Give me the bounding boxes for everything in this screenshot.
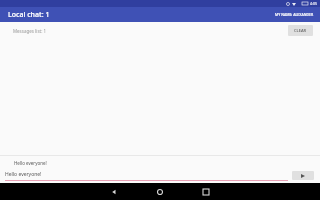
staticText: Messages list: 1 [13,28,47,34]
button[interactable]: MY NAME: ALEXANDER [275,12,314,17]
staticText: CLEAR [294,28,307,33]
staticText: Local chat: 1 [8,10,50,20]
button[interactable]: Home [137,183,183,200]
button[interactable]: Send message [292,171,314,180]
button[interactable]: Hello everyone! [5,171,288,181]
staticText: Hello everyone! [14,160,47,166]
button[interactable]: CLEAR [288,25,313,36]
staticText: Hello everyone! [5,171,42,178]
button[interactable]: Hello everyone! [14,160,47,166]
staticText: 4:05 [310,1,317,6]
button[interactable]: Recent apps [183,183,229,200]
button[interactable]: Back [91,183,137,200]
